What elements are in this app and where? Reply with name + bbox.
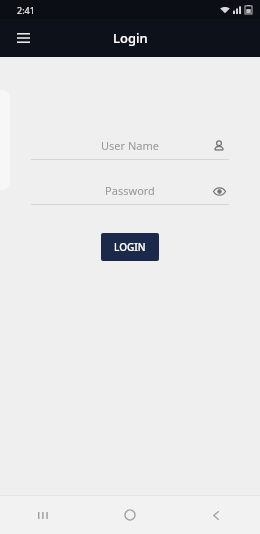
button[interactable]: LOGIN (101, 233, 159, 261)
staticText: 2:41 (17, 4, 35, 16)
button[interactable]: Password (31, 177, 229, 205)
button[interactable]: Home (86, 496, 173, 534)
button[interactable]: Show password (209, 181, 229, 201)
staticText: Password (105, 183, 155, 198)
staticText: LOGIN (114, 240, 146, 254)
button[interactable]: Recent apps (0, 496, 86, 534)
staticText: User Name (101, 138, 159, 153)
button[interactable]: Back (173, 496, 260, 534)
button[interactable]: Account (209, 136, 229, 156)
staticText: Login (113, 29, 148, 47)
button[interactable]: Open navigation menu (10, 25, 36, 51)
button[interactable]: User Name (31, 132, 229, 160)
